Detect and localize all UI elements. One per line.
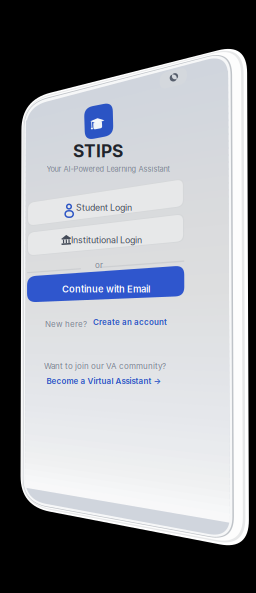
- staticText: Your AI-Powered Learning Assistant: [46, 164, 169, 173]
- button[interactable]: Student Login: [0, 0, 256, 593]
- staticText: New here?: [45, 319, 87, 329]
- staticText: Want to join our VA community?: [44, 361, 166, 371]
- staticText: STIPS: [73, 140, 123, 161]
- staticText: Student Login: [76, 202, 132, 213]
- button[interactable]: Toggle dark mode: [0, 0, 256, 593]
- staticText: Institutional Login: [71, 235, 142, 245]
- staticText: or: [95, 260, 103, 270]
- staticText: Continue with Email: [62, 283, 150, 295]
- staticText: Become a Virtual Assistant →: [46, 376, 161, 386]
- button[interactable]: Institutional Login: [0, 0, 256, 593]
- button[interactable]: Become a Virtual Assistant →: [0, 0, 256, 593]
- staticText: Create an account: [93, 317, 167, 327]
- button[interactable]: Create an account: [0, 0, 256, 593]
- button[interactable]: Continue with Email: [0, 0, 256, 593]
